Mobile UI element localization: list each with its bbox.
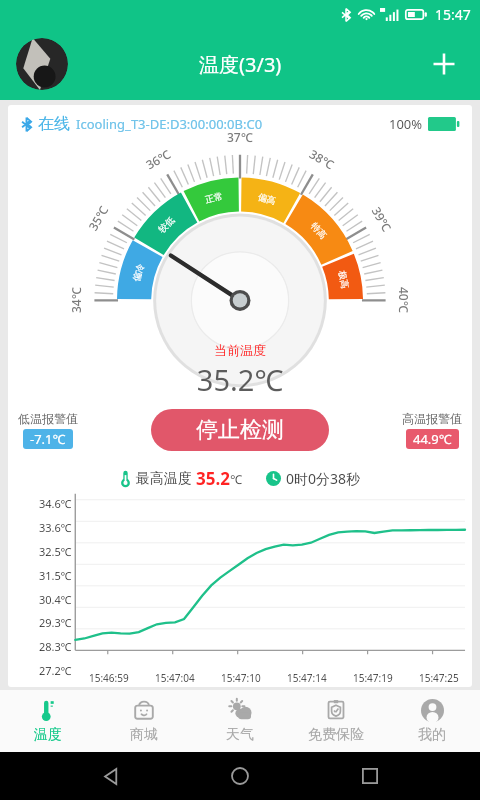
staticText: 31.5℃	[39, 568, 72, 583]
staticText: 38℃	[307, 146, 337, 172]
staticText: 在线	[38, 114, 70, 134]
staticText: 37℃	[227, 129, 253, 145]
staticText: 低温报警值	[18, 411, 78, 426]
staticText: 36℃	[143, 146, 173, 172]
staticText: 较低	[156, 214, 176, 235]
staticText: 30.4℃	[39, 592, 72, 607]
staticText: 15:47:10	[221, 671, 261, 685]
button[interactable]: 温度	[0, 690, 96, 752]
staticText: 极高	[337, 270, 351, 289]
staticText: 正常	[204, 190, 224, 205]
staticText: 28.3℃	[39, 639, 72, 654]
staticText: 0时0分38秒	[286, 469, 361, 488]
button[interactable]: 停止检测	[151, 409, 329, 451]
button[interactable]: 商城	[96, 690, 192, 752]
staticText: 40℃	[396, 287, 412, 313]
staticText: 35℃	[85, 203, 111, 233]
button[interactable]: Home	[220, 756, 260, 796]
staticText: 44.9℃	[413, 430, 452, 448]
button[interactable]: 免费保险	[288, 690, 384, 752]
staticText: 停止检测	[196, 416, 284, 444]
button[interactable]: Add device	[422, 42, 466, 86]
staticText: 35.2℃	[8, 360, 472, 399]
staticText: 偏冷	[130, 262, 146, 283]
staticText: 15:46:59	[89, 671, 129, 685]
staticText: -7.1℃	[30, 430, 66, 448]
button[interactable]: Back	[90, 756, 130, 796]
staticText: 33.6℃	[39, 520, 72, 535]
staticText: 27.2℃	[39, 663, 72, 678]
staticText: 29.3℃	[39, 615, 72, 630]
staticText: 温度	[34, 726, 62, 744]
button[interactable]: 天气	[192, 690, 288, 752]
staticText: 100%	[389, 115, 423, 133]
staticText: 特高	[309, 220, 329, 241]
staticText: 最高温度	[136, 470, 192, 488]
staticText: 我的	[418, 726, 446, 744]
staticText: 39℃	[369, 204, 395, 234]
button[interactable]: 我的	[384, 690, 480, 752]
staticText: 免费保险	[308, 726, 364, 744]
staticText: 高温报警值	[402, 411, 462, 426]
staticText: 15:47:04	[155, 671, 195, 685]
staticText: 15:47:25	[419, 671, 459, 685]
staticText: 34℃	[68, 287, 84, 313]
staticText: 15:47	[435, 5, 471, 24]
staticText: 温度(3/3)	[199, 51, 282, 78]
staticText: 35.2	[196, 467, 230, 490]
staticText: 偏高	[257, 191, 277, 206]
staticText: 15:47:14	[287, 671, 327, 685]
staticText: Icooling_T3-DE:D3:00:00:0B:C0	[76, 115, 263, 133]
staticText: 15:47:19	[353, 671, 393, 685]
staticText: 天气	[226, 726, 254, 744]
button[interactable]: Recent apps	[350, 756, 390, 796]
staticText: 当前温度	[8, 342, 472, 358]
staticText: ℃	[230, 471, 242, 487]
staticText: 商城	[130, 726, 158, 744]
button[interactable]: Profile photo	[16, 38, 68, 90]
staticText: 32.5℃	[39, 544, 72, 559]
staticText: 34.6℃	[39, 496, 72, 511]
